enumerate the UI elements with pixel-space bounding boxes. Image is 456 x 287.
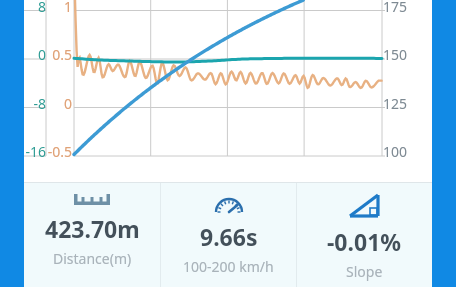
staticText: 100: [383, 142, 408, 161]
staticText: 100-200 km/h: [183, 257, 274, 276]
staticText: -16: [20, 142, 46, 161]
staticText: -0.01%: [327, 226, 402, 257]
staticText: Slope: [346, 262, 383, 281]
staticText: 0: [20, 45, 46, 64]
other: Distance: [74, 193, 110, 205]
staticText: 8: [20, 0, 46, 16]
staticText: 0.5: [44, 45, 72, 64]
staticText: -0.5: [44, 142, 72, 161]
button[interactable]: Slope: [297, 183, 432, 287]
other: Acceleration time: [214, 193, 244, 213]
staticText: -8: [20, 94, 46, 113]
staticText: 125: [383, 94, 408, 113]
staticText: 1: [44, 0, 72, 16]
staticText: 423.70m: [45, 213, 140, 244]
staticText: 175: [383, 0, 408, 16]
button[interactable]: Acceleration time: [161, 183, 296, 287]
button[interactable]: Distance: [24, 183, 160, 287]
other: Slope: [349, 193, 380, 218]
staticText: 9.66s: [200, 221, 258, 252]
staticText: 0: [44, 94, 72, 113]
staticText: 150: [383, 45, 408, 64]
staticText: Distance(m): [53, 249, 132, 268]
